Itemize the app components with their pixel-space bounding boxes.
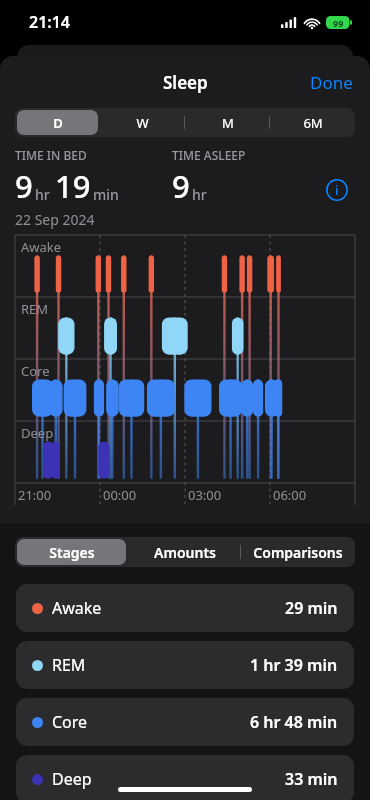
staticText: REM xyxy=(52,654,86,676)
staticText: i xyxy=(335,181,339,199)
staticText: Awake xyxy=(21,238,62,256)
staticText: 9 xyxy=(15,165,33,207)
button[interactable]: Awake xyxy=(16,584,354,632)
staticText: 21:14 xyxy=(29,11,71,33)
staticText: REM xyxy=(21,300,49,318)
staticText: Comparisons xyxy=(253,543,343,562)
staticText: Core xyxy=(21,362,50,380)
button[interactable]: Core xyxy=(16,698,354,746)
staticText: M xyxy=(222,114,234,132)
staticText: Awake xyxy=(52,597,102,619)
button[interactable]: Done xyxy=(293,59,370,106)
button[interactable]: Amounts xyxy=(128,537,241,567)
staticText: D xyxy=(53,114,63,132)
staticText: Amounts xyxy=(154,543,216,562)
button[interactable]: M xyxy=(185,108,270,137)
button[interactable]: Stages xyxy=(15,537,128,567)
staticText: W xyxy=(136,114,149,132)
staticText: 29 min xyxy=(285,597,338,619)
staticText: hr xyxy=(192,185,207,204)
staticText: Deep xyxy=(21,424,54,442)
staticText: 9 xyxy=(172,165,190,207)
button[interactable]: 6M xyxy=(270,108,355,137)
staticText: Deep xyxy=(52,768,92,790)
staticText: Sleep xyxy=(163,71,208,94)
button[interactable]: W xyxy=(100,108,185,137)
button[interactable]: D xyxy=(15,108,100,137)
staticText: 19 xyxy=(55,165,91,207)
staticText: 00:00 xyxy=(103,486,137,504)
staticText: min xyxy=(93,185,119,204)
staticText: hr xyxy=(35,185,50,204)
staticText: 06:00 xyxy=(273,486,307,504)
staticText: Stages xyxy=(49,543,95,562)
staticText: TIME IN BED xyxy=(15,147,87,163)
staticText: 1 hr 39 min xyxy=(250,654,338,676)
button[interactable]: Comparisons xyxy=(241,537,354,567)
staticText: 33 min xyxy=(285,768,338,790)
staticText: 21:00 xyxy=(18,486,52,504)
staticText: 99 xyxy=(333,17,344,29)
staticText: Done xyxy=(310,71,353,94)
staticText: 6M xyxy=(303,114,323,132)
staticText: 6 hr 48 min xyxy=(250,711,338,733)
staticText: 03:00 xyxy=(188,486,222,504)
button[interactable]: REM xyxy=(16,641,354,689)
staticText: Core xyxy=(52,711,88,733)
staticText: TIME ASLEEP xyxy=(172,147,246,163)
staticText: 22 Sep 2024 xyxy=(15,210,95,229)
button[interactable]: Deep xyxy=(16,755,354,800)
button[interactable]: About sleep data xyxy=(319,172,355,208)
